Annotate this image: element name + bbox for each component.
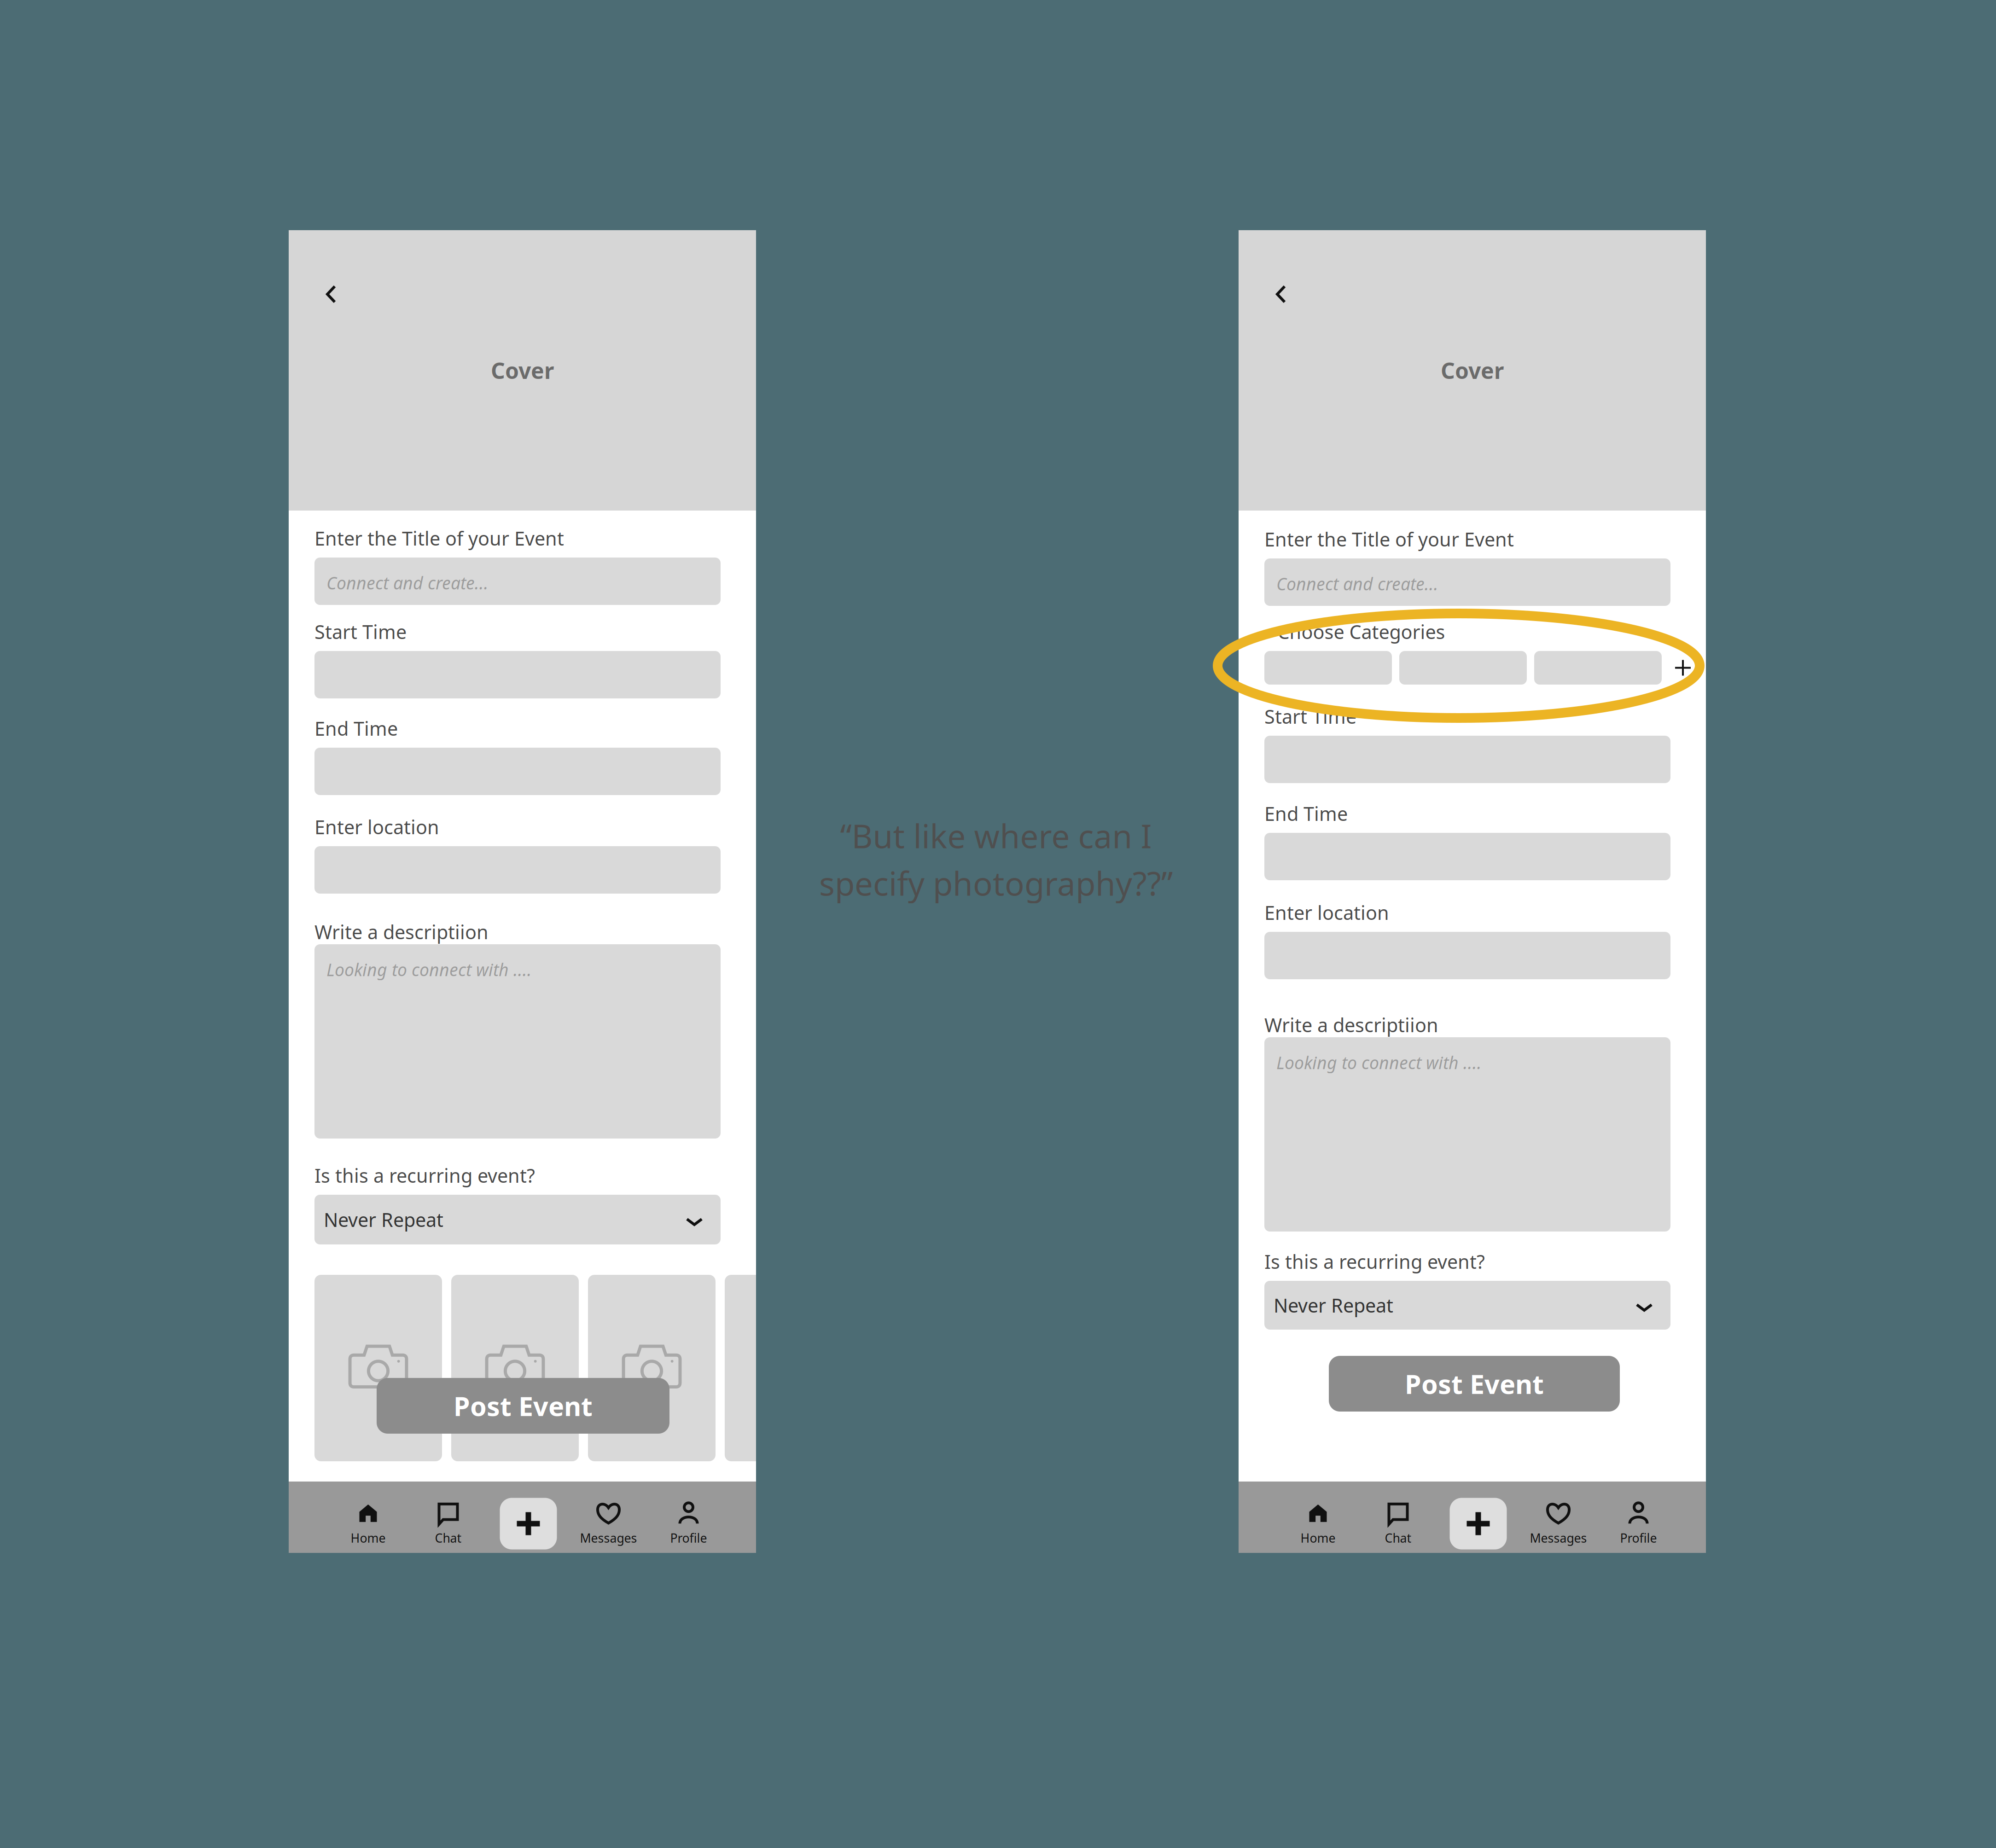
button[interactable]: Post Event [377, 1378, 669, 1434]
button[interactable]: Back [1260, 273, 1302, 315]
button[interactable]: Category 2 [1399, 651, 1527, 685]
button[interactable]: Category 1 [1264, 651, 1392, 685]
staticText: Connect and create... [326, 571, 489, 594]
staticText: Connect and create... [1276, 572, 1438, 595]
button[interactable]: Looking to connect with .... [314, 944, 721, 1139]
staticText: “But like where can I [840, 814, 1152, 857]
button[interactable]: Category 3 [1534, 651, 1662, 685]
button[interactable]: Profile [1598, 1488, 1679, 1559]
button[interactable]: Home [328, 1488, 408, 1559]
staticText: End Time [1264, 801, 1348, 826]
staticText: Messages [1530, 1530, 1587, 1546]
button[interactable]: Messages [1518, 1488, 1598, 1559]
staticText: Messages [580, 1530, 637, 1546]
button[interactable]: Add photo [314, 1275, 442, 1461]
button[interactable]: Add category [1669, 651, 1697, 685]
staticText: Chat [1385, 1530, 1411, 1546]
staticText: Home [351, 1530, 386, 1546]
button[interactable]: Home [1278, 1488, 1358, 1559]
button[interactable]: Chat [1358, 1488, 1438, 1559]
button[interactable]: Add photo [451, 1275, 579, 1461]
staticText: Post Event [454, 1388, 593, 1423]
staticText: Enter location [314, 814, 439, 840]
button[interactable]: Create [488, 1488, 568, 1559]
staticText: Start Time [314, 619, 407, 644]
staticText: Never Repeat [1274, 1293, 1393, 1318]
button[interactable]: Post Event [1329, 1356, 1620, 1412]
button[interactable]: Never Repeat [1264, 1281, 1670, 1330]
staticText: Never Repeat [324, 1207, 443, 1232]
staticText: Looking to connect with .... [1276, 1051, 1482, 1074]
staticText: Is this a recurring event? [1264, 1249, 1485, 1274]
staticText: End Time [314, 716, 398, 741]
staticText: Cover [1441, 356, 1504, 385]
staticText: Enter location [1264, 900, 1389, 925]
button[interactable]: Chat [408, 1488, 488, 1559]
staticText: Post Event [1405, 1366, 1544, 1401]
button[interactable]: Connect and create... [314, 558, 721, 605]
staticText: Profile [1620, 1530, 1657, 1546]
staticText: Home [1301, 1530, 1336, 1546]
staticText: Write a descriptiion [1264, 1012, 1438, 1037]
button[interactable]: Never Repeat [314, 1195, 721, 1244]
staticText: Looking to connect with .... [326, 958, 532, 981]
staticText: Is this a recurring event? [314, 1163, 535, 1188]
staticText: Start Time [1264, 704, 1356, 729]
staticText: Write a descriptiion [314, 919, 489, 944]
staticText: Choose Categories [1277, 619, 1445, 644]
button[interactable]: Profile [649, 1488, 729, 1559]
staticText: specify photography??” [819, 861, 1173, 905]
staticText: Cover [491, 356, 554, 385]
staticText: Profile [670, 1530, 707, 1546]
button[interactable]: Connect and create... [1264, 558, 1670, 606]
button[interactable]: Create [1438, 1488, 1518, 1559]
button[interactable] [314, 846, 721, 894]
button[interactable]: Messages [568, 1488, 649, 1559]
button[interactable]: Add photo [588, 1275, 716, 1461]
staticText: Enter the Title of your Event [314, 526, 564, 551]
button[interactable]: Looking to connect with .... [1264, 1037, 1670, 1232]
button[interactable]: Back [310, 273, 352, 315]
staticText: Enter the Title of your Event [1264, 527, 1514, 552]
button[interactable]: Add photo [725, 1275, 852, 1461]
staticText: Chat [435, 1530, 462, 1546]
